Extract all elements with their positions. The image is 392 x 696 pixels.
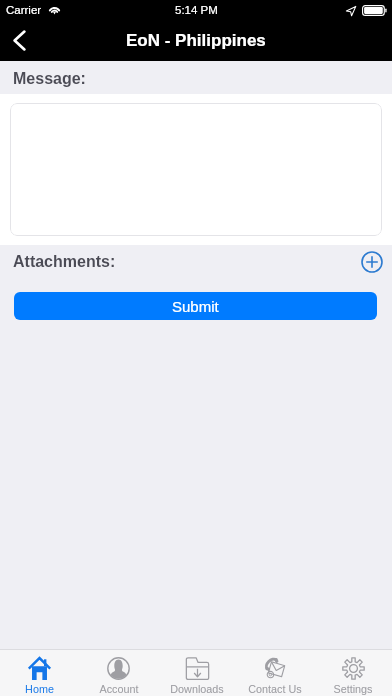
button[interactable]: Downloads [158, 650, 236, 696]
staticText: Attachments: [13, 253, 116, 271]
button[interactable]: Home [0, 650, 79, 696]
button[interactable] [10, 103, 382, 236]
staticText: EoN - Philippines [126, 31, 266, 50]
staticText: Settings [333, 683, 373, 695]
staticText: Home [25, 683, 54, 695]
button[interactable]: Account [79, 650, 158, 696]
button[interactable]: Submit [14, 292, 377, 320]
button[interactable]: Add attachment [358, 248, 385, 275]
staticText: Message: [13, 70, 86, 88]
staticText: 5:14 PM [175, 4, 218, 17]
button[interactable]: Contact Us [236, 650, 314, 696]
staticText: Submit [172, 298, 219, 315]
staticText: Carrier [6, 4, 42, 17]
button[interactable]: Back [0, 20, 38, 61]
button[interactable]: Settings [314, 650, 392, 696]
staticText: Contact Us [248, 683, 302, 695]
staticText: Downloads [170, 683, 224, 695]
staticText: Account [99, 683, 139, 695]
